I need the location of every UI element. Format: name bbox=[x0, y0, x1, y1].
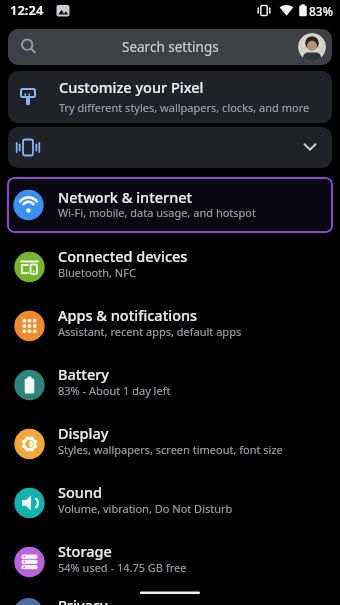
staticText: 54% used - 14.75 GB free bbox=[58, 560, 187, 575]
staticText: Display bbox=[58, 423, 109, 443]
staticText: Sound bbox=[58, 482, 103, 502]
staticText: Search settings bbox=[122, 38, 219, 56]
staticText: Volume, vibration, Do Not Disturb bbox=[58, 501, 233, 516]
staticText: 12:24 bbox=[10, 1, 44, 19]
staticText: Network & internet bbox=[58, 187, 193, 207]
staticText: Bluetooth, NFC bbox=[58, 265, 136, 280]
staticText: 83% bbox=[309, 3, 333, 19]
staticText: Connected devices bbox=[58, 246, 188, 266]
staticText: Wi-Fi, mobile, data usage, and hotspot bbox=[58, 205, 256, 220]
staticText: Customize your Pixel bbox=[59, 77, 204, 97]
staticText: Try different styles, wallpapers, clocks… bbox=[59, 100, 310, 115]
staticText: Storage bbox=[58, 541, 112, 561]
staticText: Styles, wallpapers, screen timeout, font… bbox=[58, 442, 283, 457]
staticText: Battery bbox=[58, 364, 109, 384]
staticText: 83% - About 1 day left bbox=[58, 383, 171, 398]
staticText: Apps & notifications bbox=[58, 305, 198, 325]
staticText: Assistant, recent apps, default apps bbox=[58, 324, 242, 339]
staticText: Privacy bbox=[58, 595, 108, 605]
